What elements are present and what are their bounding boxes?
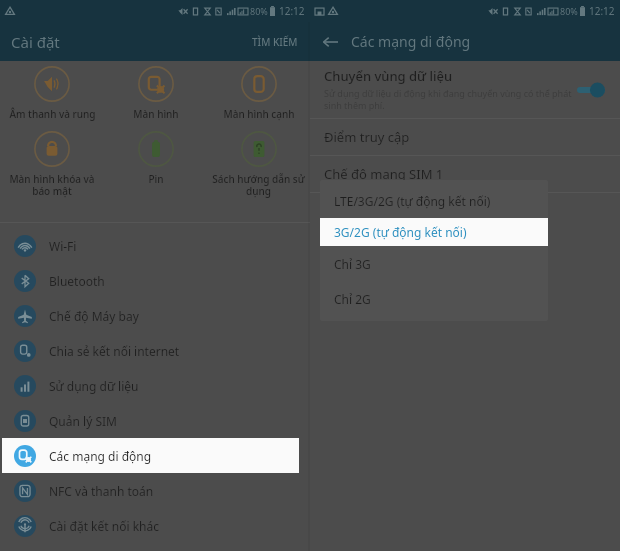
button[interactable]: Âm thanh và rung — [0, 66, 104, 121]
staticText: Chỉ 3G — [334, 256, 371, 272]
button[interactable]: Back — [310, 22, 471, 61]
button[interactable]: Chỉ 3G — [320, 246, 548, 281]
staticText: 12:12 — [279, 4, 305, 18]
staticText: LTE/3G/2G (tự động kết nối) — [334, 193, 491, 209]
staticText: Chỉ 2G — [334, 291, 371, 307]
button[interactable]: Sử dụng dữ liệu — [0, 368, 310, 403]
button[interactable]: LTE/3G/2G (tự động kết nối) — [320, 183, 548, 218]
button[interactable]: Điểm truy cập — [310, 119, 620, 155]
button[interactable]: Màn hình — [104, 66, 207, 121]
button[interactable]: Bluetooth — [0, 263, 310, 298]
staticText: NFC và thanh toán — [49, 483, 154, 499]
staticText: Chuyển vùng dữ liệu — [324, 67, 453, 85]
button[interactable]: Sách hướng dẫn sử dụng — [207, 131, 310, 198]
button[interactable]: Chế độ mạng SIM 1 — [310, 156, 620, 192]
staticText: Màn hình khóa và báo mật — [9, 172, 95, 198]
button[interactable]: Quản lý SIM — [0, 403, 310, 438]
staticText: Màn hình — [133, 107, 179, 121]
staticText: Sử dụng dữ liệu di động khi đang chuyển … — [324, 87, 572, 112]
staticText: Các mạng di động — [351, 32, 471, 51]
staticText: Chế độ Máy bay — [49, 308, 139, 324]
staticText: Màn hình cạnh — [223, 107, 295, 121]
button[interactable]: Cài đặt kết nối khác — [0, 508, 310, 543]
button[interactable]: TÌM KIẾM — [240, 22, 310, 61]
staticText: Sách hướng dẫn sử dụng — [212, 172, 305, 198]
staticText: Cài đặt — [11, 32, 60, 52]
button[interactable]: 3G/2G (tự động kết nối) — [320, 218, 548, 246]
staticText: Chế độ mạng SIM 1 — [324, 165, 444, 183]
button[interactable]: NFC và thanh toán — [0, 473, 310, 508]
staticText: Quản lý SIM — [49, 413, 117, 429]
button[interactable]: Các mạng di động — [2, 438, 299, 473]
staticText: Bluetooth — [49, 273, 105, 289]
staticText: Wi-Fi — [49, 238, 77, 254]
staticText: 3G/2G (tự động kết nối) — [334, 224, 467, 240]
button[interactable]: Chuyển vùng dữ liệu — [310, 61, 620, 118]
button[interactable]: Chế độ Máy bay — [0, 298, 310, 333]
staticText: Các mạng di động — [49, 448, 152, 464]
staticText: Cài đặt kết nối khác — [49, 518, 159, 534]
staticText: 80% — [250, 5, 268, 17]
staticText: Sử dụng dữ liệu — [49, 378, 139, 394]
button[interactable]: Wi-Fi — [0, 228, 310, 263]
staticText: TÌM KIẾM — [252, 35, 298, 49]
button[interactable]: Màn hình cạnh — [207, 66, 310, 121]
staticText: Điểm truy cập — [324, 128, 410, 146]
staticText: 12:12 — [589, 4, 615, 18]
button[interactable]: Pin — [104, 131, 207, 186]
staticText: Chia sẻ kết nối internet — [49, 343, 180, 359]
staticText: Âm thanh và rung — [9, 107, 96, 121]
staticText: 80% — [560, 5, 578, 17]
staticText: Pin — [148, 172, 164, 186]
button[interactable]: Chỉ 2G — [320, 281, 548, 316]
button[interactable]: Chia sẻ kết nối internet — [0, 333, 310, 368]
button[interactable]: Màn hình khóa và báo mật — [0, 131, 104, 198]
